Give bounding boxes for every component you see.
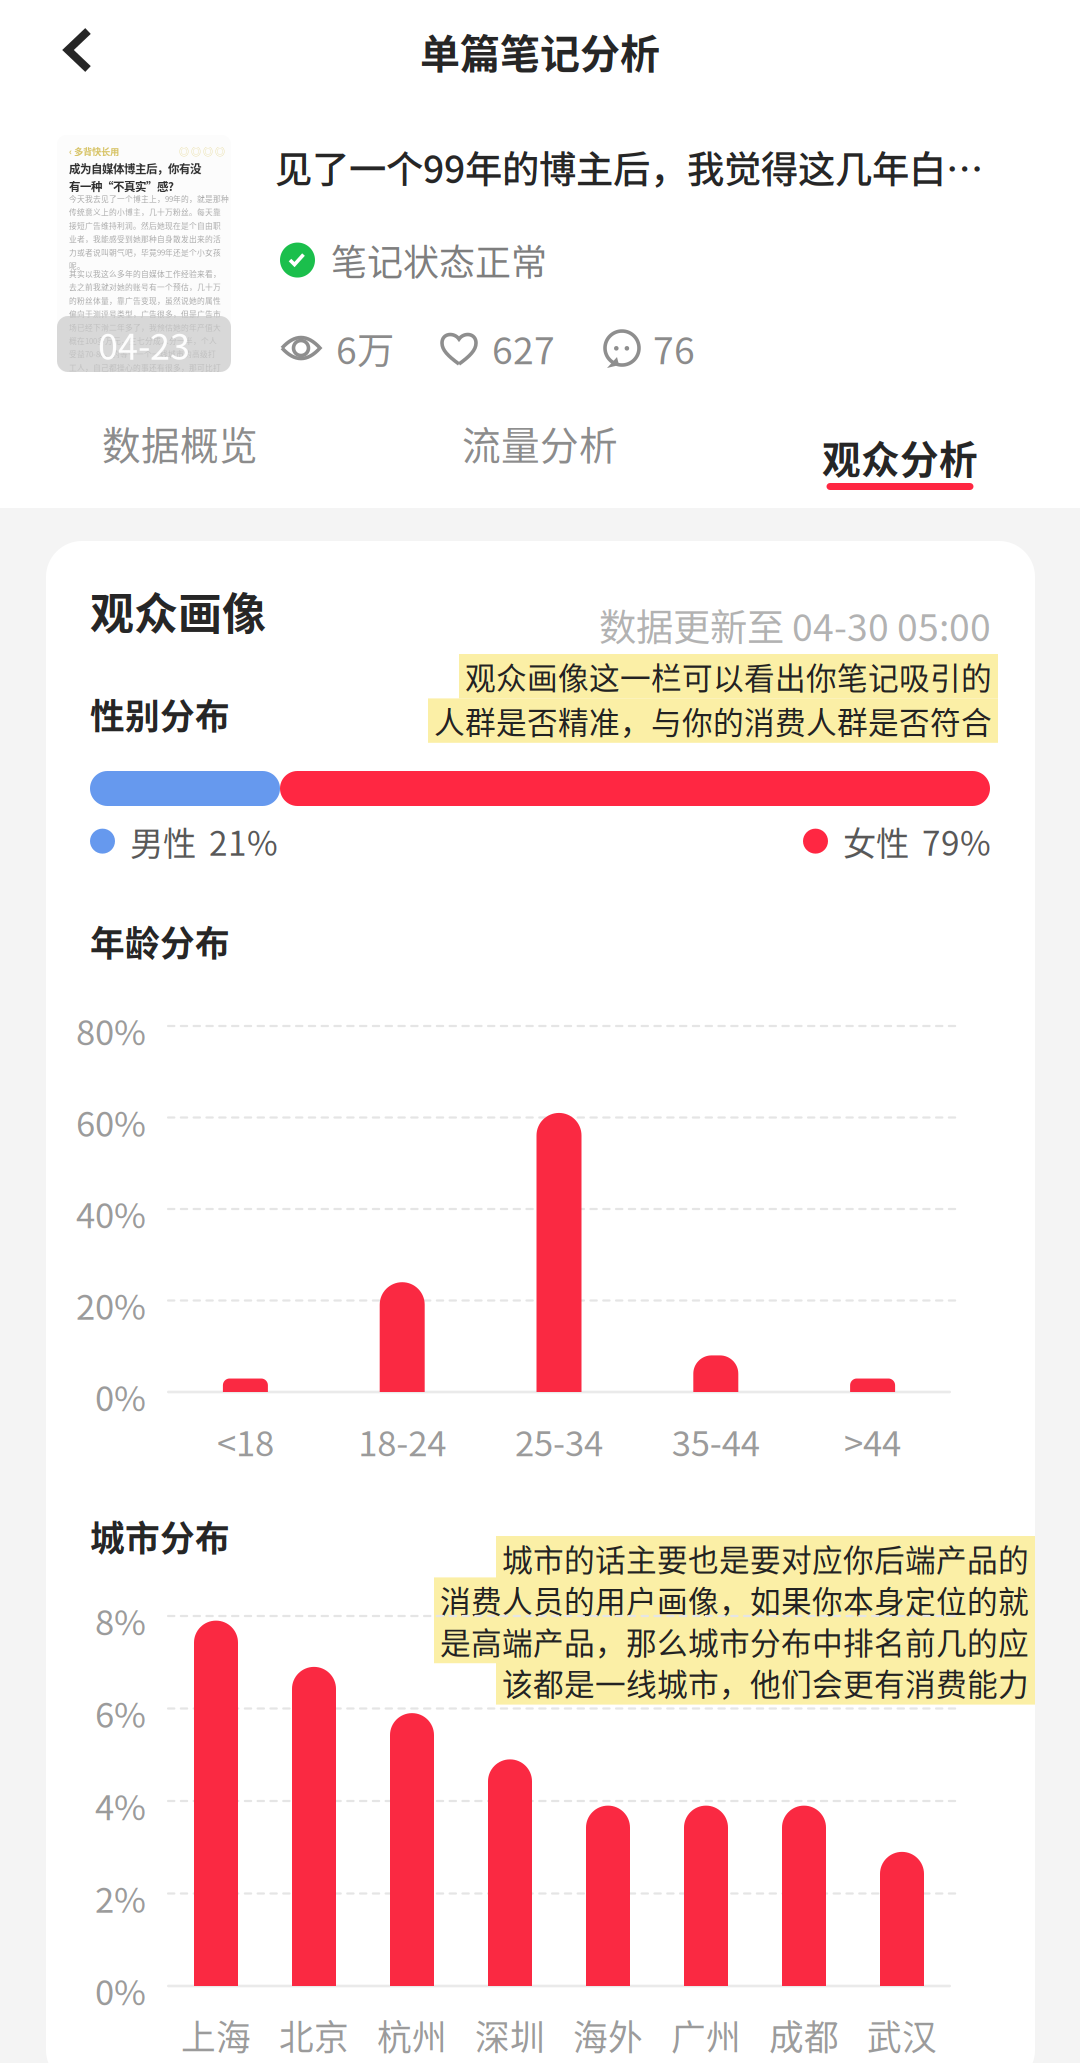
staticText: 6万 — [336, 321, 394, 375]
staticText: 20% — [76, 1279, 146, 1330]
staticText: 年龄分布 — [90, 916, 230, 966]
staticText: 的粉丝体量，靠广告变现，虽然说她的属性 — [69, 295, 221, 306]
staticText: 76 — [653, 321, 695, 375]
staticText: 深圳 — [475, 2010, 545, 2060]
staticText: 25-34 — [515, 1416, 603, 1466]
staticText: 女性 — [843, 817, 909, 865]
staticText: 武汉 — [867, 2010, 937, 2060]
staticText: 数据更新至 04-30 05:00 — [599, 598, 991, 652]
staticText: 上海 — [181, 2010, 251, 2060]
staticText: 4% — [95, 1780, 146, 1830]
staticText: 04-23 — [98, 318, 190, 370]
staticText: 力或者说叫朝气吧，毕竟99年还是个小女孩 — [69, 247, 221, 258]
staticText: 呢。 — [69, 260, 85, 271]
staticText: 场已经下滑二年多了，我预估她的年产值大 — [69, 322, 221, 333]
staticText: 18-24 — [358, 1416, 446, 1466]
staticText: 8% — [95, 1595, 146, 1645]
staticText: 去之前我就对她的账号有一个预估，几十万 — [69, 281, 221, 293]
staticText: 偏向于测评号类型，广告很多，但是广告市 — [69, 308, 221, 319]
staticText: 该都是一线城市，他们会更有消费能力 — [502, 1660, 1029, 1705]
staticText: 海外 — [573, 2010, 643, 2060]
staticText: ◎ ◎ ◎ ◎ — [179, 144, 225, 158]
staticText: 单篇笔记分析 — [420, 22, 660, 80]
staticText: <18 — [217, 1416, 274, 1466]
staticText: 接短广告维持利润。然后她现在是个自由职 — [69, 220, 221, 231]
staticText: 北京 — [279, 2010, 349, 2060]
staticText: 传统意义上的小博主，几十万粉丝。每天靠 — [69, 206, 221, 218]
staticText: 其实以我这么多年的自媒体工作经验来看， — [69, 268, 221, 279]
staticText: 60% — [76, 1096, 146, 1147]
staticText: 80% — [76, 1005, 146, 1055]
staticText: 0% — [95, 1371, 146, 1421]
staticText: ‹ 多背快长用 — [69, 144, 119, 158]
staticText: 数据概览 — [102, 415, 258, 471]
staticText: 概在100多万元，三七分成人分一半，个人 — [69, 335, 217, 346]
staticText: 工人，自己都操心的事还有很多，那可比打 — [69, 362, 221, 373]
staticText: 广州 — [671, 2010, 741, 2060]
staticText: 21% — [209, 817, 278, 865]
staticText: 627 — [492, 321, 555, 375]
button[interactable]: 流量分析 — [360, 394, 720, 492]
staticText: 男性 — [130, 817, 196, 865]
staticText: 观众画像 — [90, 579, 266, 643]
staticText: 受益70-80，约等于一个一线城市的高级打 — [69, 348, 216, 360]
staticText: 有一种“不真实”感? — [69, 178, 174, 194]
button[interactable]: 观众分析 — [720, 394, 1080, 492]
staticText: 业者，我能感受到她那种自身散发出来的活 — [69, 233, 221, 244]
staticText: 79% — [922, 817, 991, 865]
staticText: 是高端产品，那么城市分布中排名前几的应 — [440, 1619, 1029, 1663]
staticText: 40% — [76, 1188, 146, 1238]
staticText: 笔记状态正常 — [331, 234, 547, 286]
button[interactable]: 数据概览 — [0, 394, 360, 492]
staticText: 人群是否精准，与你的消费人群是否符合 — [434, 698, 992, 743]
staticText: 成为自媒体博主后，你有没 — [69, 160, 201, 177]
staticText: 观众画像这一栏可以看出你笔记吸引的 — [465, 654, 992, 698]
staticText: 消费人员的用户画像，如果你本身定位的就 — [440, 1577, 1029, 1622]
staticText: 今天我去见了一个博主上，99年的，就是那种 — [69, 193, 229, 204]
staticText: 城市分布 — [90, 1511, 230, 1561]
staticText: >44 — [844, 1416, 901, 1466]
staticText: 见了一个99年的博主后，我觉得这几年白… — [275, 140, 983, 194]
staticText: 观众分析 — [822, 429, 978, 485]
staticText: 0% — [95, 1965, 146, 2015]
staticText: 杭州 — [377, 2010, 447, 2060]
staticText: 2% — [95, 1872, 146, 1923]
staticText: 35-44 — [672, 1416, 760, 1466]
staticText: 流量分析 — [462, 415, 618, 471]
staticText: 城市的话主要也是要对应你后端产品的 — [502, 1536, 1029, 1580]
staticText: 性别分布 — [90, 689, 230, 739]
staticText: 成都 — [769, 2010, 839, 2060]
button[interactable]: 返回 — [33, 5, 123, 95]
staticText: 6% — [95, 1687, 146, 1738]
